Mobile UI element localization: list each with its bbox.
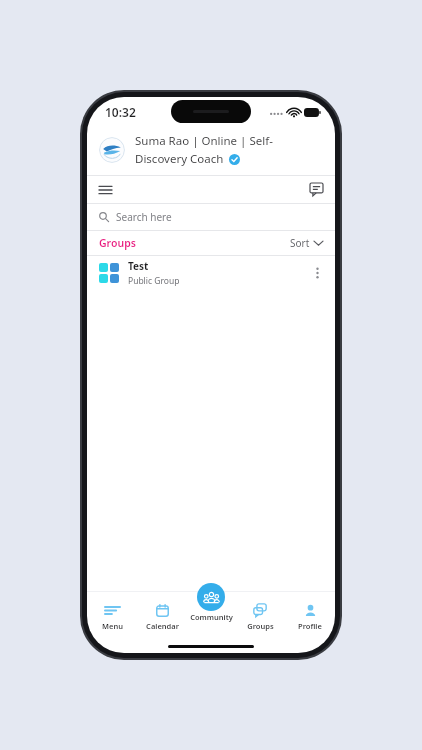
button[interactable]: Test: [87, 256, 335, 290]
staticText: Calendar: [146, 621, 179, 631]
staticText: Profile: [298, 621, 322, 631]
staticText: Search here: [116, 210, 172, 224]
staticText: Groups: [247, 621, 274, 631]
button[interactable]: Sort: [290, 236, 323, 250]
button[interactable]: Menu: [88, 600, 136, 633]
staticText: Discovery Coach: [135, 151, 224, 167]
staticText: Menu: [102, 621, 123, 631]
button[interactable]: Menu: [87, 179, 124, 201]
staticText: Sort: [290, 236, 310, 250]
staticText: Public Group: [128, 275, 180, 287]
button[interactable]: Suma Rao | Online | Self-: [87, 127, 335, 175]
button[interactable]: Groups: [236, 600, 284, 633]
button[interactable]: Groups: [99, 236, 136, 250]
button[interactable]: Calendar: [138, 600, 186, 633]
button[interactable]: Community: [187, 591, 235, 633]
staticText: Community: [190, 612, 233, 622]
staticText: Test: [128, 259, 149, 273]
button[interactable]: Profile: [286, 600, 334, 633]
staticText: 10:32: [105, 104, 136, 120]
button[interactable]: More options: [312, 263, 323, 283]
staticText: Suma Rao | Online | Self-: [135, 133, 273, 149]
button[interactable]: Messages: [298, 178, 335, 201]
button[interactable]: Search here: [87, 204, 335, 230]
